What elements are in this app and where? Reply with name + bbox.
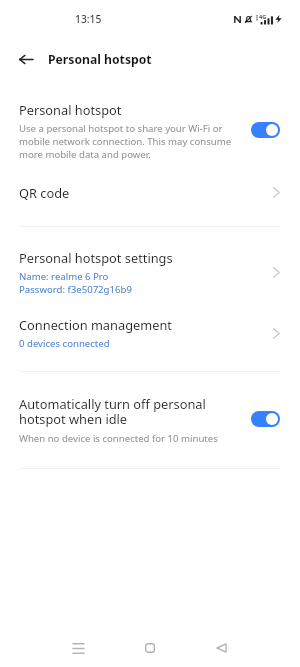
button[interactable]: Personal hotspot bbox=[0, 88, 300, 174]
staticText: Connection management bbox=[19, 316, 172, 333]
staticText: When no device is connected for 10 minut… bbox=[19, 432, 218, 445]
staticText: Use a personal hotspot to share your Wi-… bbox=[19, 122, 245, 161]
staticText: 4G bbox=[259, 13, 267, 21]
staticText: Password: f3e5072g16b9 bbox=[19, 283, 132, 296]
button[interactable]: Back bbox=[13, 46, 39, 72]
staticText: Automatically turn off personal hotspot … bbox=[19, 395, 229, 428]
staticText: Personal hotspot settings bbox=[19, 249, 173, 266]
button[interactable]: Automatically turn off personal hotspot … bbox=[0, 372, 300, 468]
staticText: Personal hotspot bbox=[48, 51, 152, 68]
staticText: Personal hotspot bbox=[19, 101, 122, 118]
button[interactable]: Toggle bbox=[251, 411, 280, 427]
staticText: Name: realme 6 Pro bbox=[19, 270, 109, 283]
staticText: 0 devices connected bbox=[19, 337, 110, 350]
button[interactable]: Recents bbox=[62, 632, 94, 664]
button[interactable]: QR code bbox=[0, 174, 300, 226]
staticText: QR code bbox=[19, 184, 273, 201]
button[interactable]: Connection management bbox=[0, 308, 300, 371]
staticText: 13:15 bbox=[75, 12, 102, 26]
button[interactable]: Toggle bbox=[251, 122, 280, 138]
button[interactable]: Back bbox=[205, 632, 237, 664]
button[interactable]: Personal hotspot settings bbox=[0, 227, 300, 308]
button[interactable]: Home bbox=[134, 632, 166, 664]
